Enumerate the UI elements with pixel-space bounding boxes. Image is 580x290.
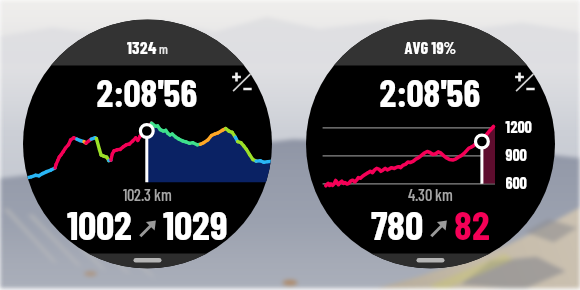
button[interactable]: Route elevation profile [0, 0, 580, 290]
